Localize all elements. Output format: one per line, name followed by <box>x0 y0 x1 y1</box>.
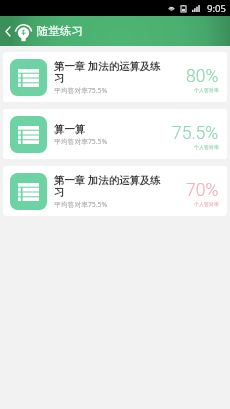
staticText: 第一章 加法的运算及练习 <box>54 173 167 199</box>
staticText: 平均答对率75.5% <box>54 86 108 95</box>
button[interactable]: Back <box>3 24 12 38</box>
staticText: 75.5% <box>172 123 219 144</box>
staticText: 第一章 加法的运算及练习 <box>54 59 167 85</box>
staticText: 平均答对率75.5% <box>54 137 108 146</box>
staticText: 个人答对率 <box>194 144 219 150</box>
staticText: 算一算 <box>54 123 86 136</box>
button[interactable]: 第一章 加法的运算及练习 <box>3 52 227 102</box>
staticText: 80% <box>186 66 219 87</box>
button[interactable]: 第一章 加法的运算及练习 <box>3 166 227 216</box>
button[interactable]: 算一算 <box>3 109 227 159</box>
staticText: 70% <box>186 180 219 201</box>
staticText: 平均答对率75.5% <box>54 200 108 209</box>
staticText: 9:05 <box>207 2 226 15</box>
staticText: 个人答对率 <box>194 87 219 93</box>
staticText: 随堂练习 <box>37 24 83 38</box>
staticText: 个人答对率 <box>194 201 219 207</box>
